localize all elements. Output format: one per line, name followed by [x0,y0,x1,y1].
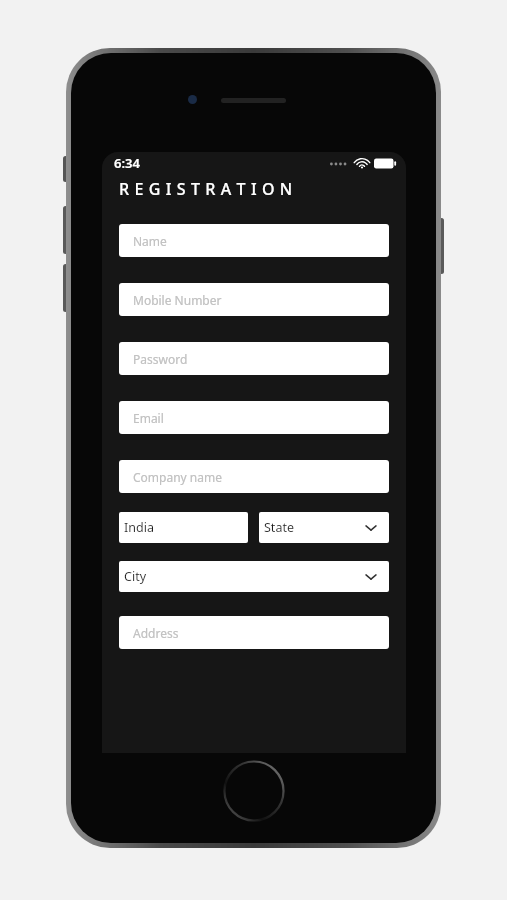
staticText: R E G I S T R A T I O N [119,178,293,200]
button[interactable]: India [119,512,248,543]
staticText: State [264,519,294,536]
staticText: Password [133,351,188,367]
staticText: Email [133,410,164,426]
button[interactable]: City dropdown [119,561,389,592]
button[interactable]: Mobile Number [119,283,389,316]
button[interactable]: Password [119,342,389,375]
staticText: Name [133,233,167,249]
staticText: India [124,519,154,536]
button[interactable]: State dropdown [259,512,389,543]
button[interactable]: Address [119,616,389,649]
staticText: Mobile Number [133,292,222,308]
staticText: Address [133,625,179,641]
button[interactable]: Company name [119,460,389,493]
button[interactable]: Name [119,224,389,257]
staticText: Company name [133,469,222,485]
staticText: City [124,568,147,585]
button[interactable]: Email [119,401,389,434]
staticText: 6:34 [114,154,140,172]
